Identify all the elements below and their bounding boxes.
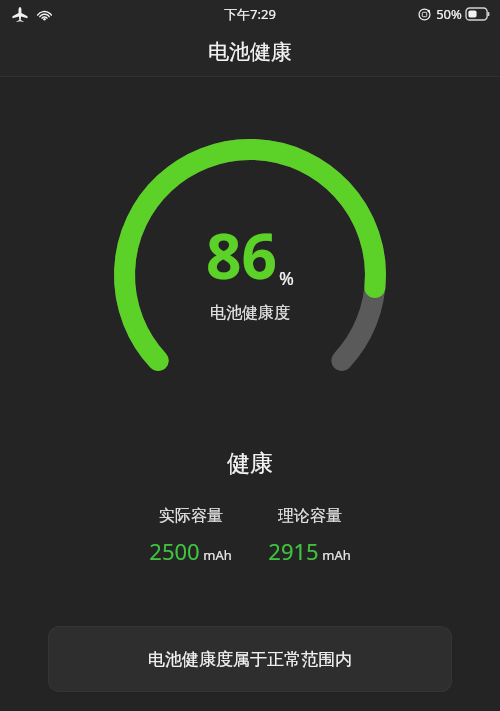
staticText: 理论容量 — [278, 506, 342, 526]
staticText: 2915 — [268, 536, 319, 566]
staticText: 50% — [436, 5, 462, 23]
staticText: mAh — [203, 546, 232, 564]
staticText: mAh — [322, 546, 351, 564]
staticText: 电池健康 — [208, 39, 292, 65]
staticText: 实际容量 — [159, 506, 223, 526]
staticText: % — [279, 266, 294, 291]
staticText: 健康 — [227, 449, 273, 478]
staticText: 86 — [206, 213, 277, 297]
staticText: 电池健康度 — [210, 303, 290, 323]
staticText: 2500 — [149, 536, 200, 566]
staticText: 下午7:29 — [224, 5, 276, 23]
staticText: 电池健康度属于正常范围内 — [148, 649, 352, 670]
button[interactable]: 电池健康度属于正常范围内 — [48, 626, 452, 692]
